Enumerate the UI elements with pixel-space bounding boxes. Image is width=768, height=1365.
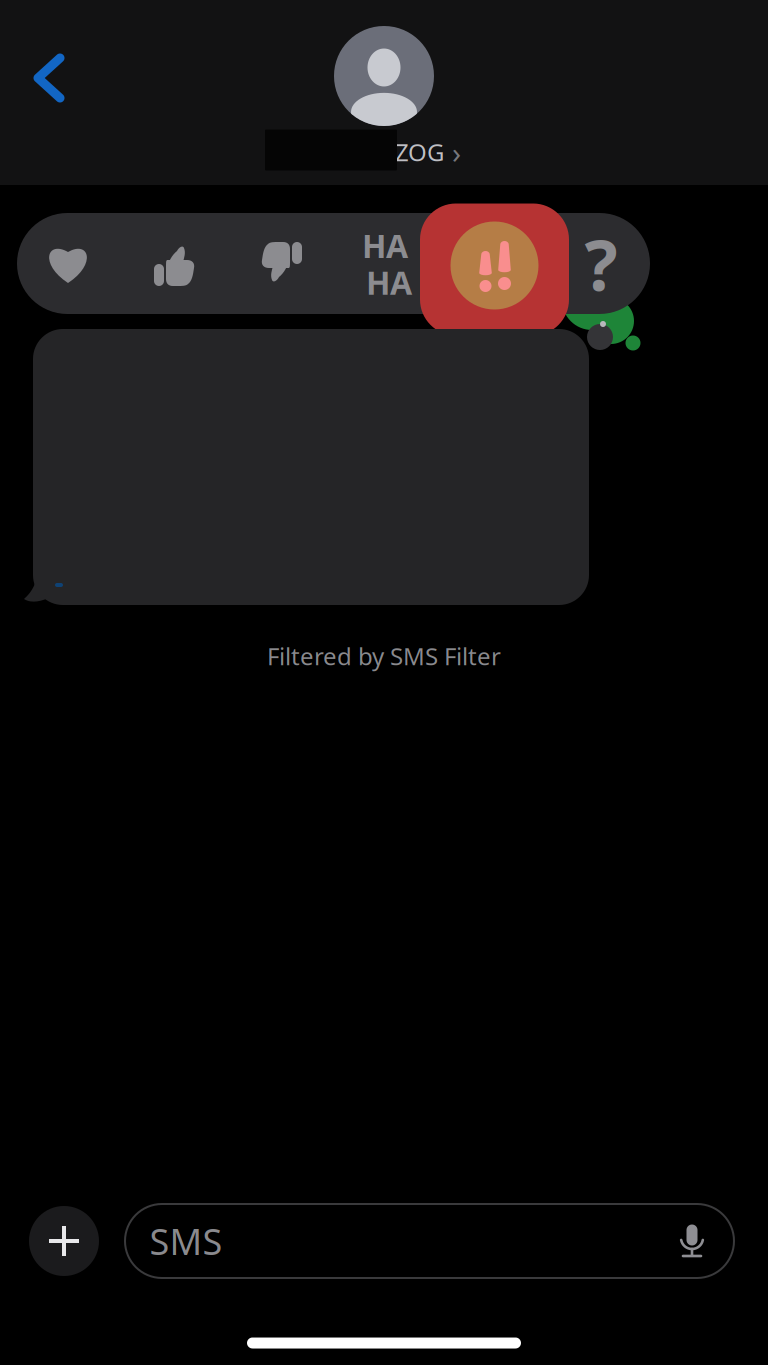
staticText: Filtered by SMS Filter — [267, 640, 501, 672]
staticText: › — [452, 132, 461, 172]
button[interactable]: SMS — [125, 1204, 734, 1278]
button[interactable]: Exclaim — [419, 203, 569, 339]
staticText: HA — [366, 260, 412, 304]
button[interactable]: Like — [127, 216, 223, 312]
button[interactable]: ZOG — [244, 25, 524, 185]
button[interactable]: Love — [20, 216, 116, 312]
button[interactable]: Dictate — [664, 1208, 720, 1274]
staticText: ZOG — [395, 136, 444, 168]
button[interactable]: Dislike — [233, 216, 329, 312]
button[interactable]: Back — [6, 23, 92, 133]
button[interactable]: Laugh — [339, 216, 435, 312]
staticText: HA — [362, 224, 408, 267]
button[interactable]: Question — [553, 216, 649, 312]
button[interactable]: Add attachment — [26, 1203, 102, 1279]
staticText: ? — [584, 217, 617, 311]
staticText: SMS — [149, 1216, 222, 1265]
